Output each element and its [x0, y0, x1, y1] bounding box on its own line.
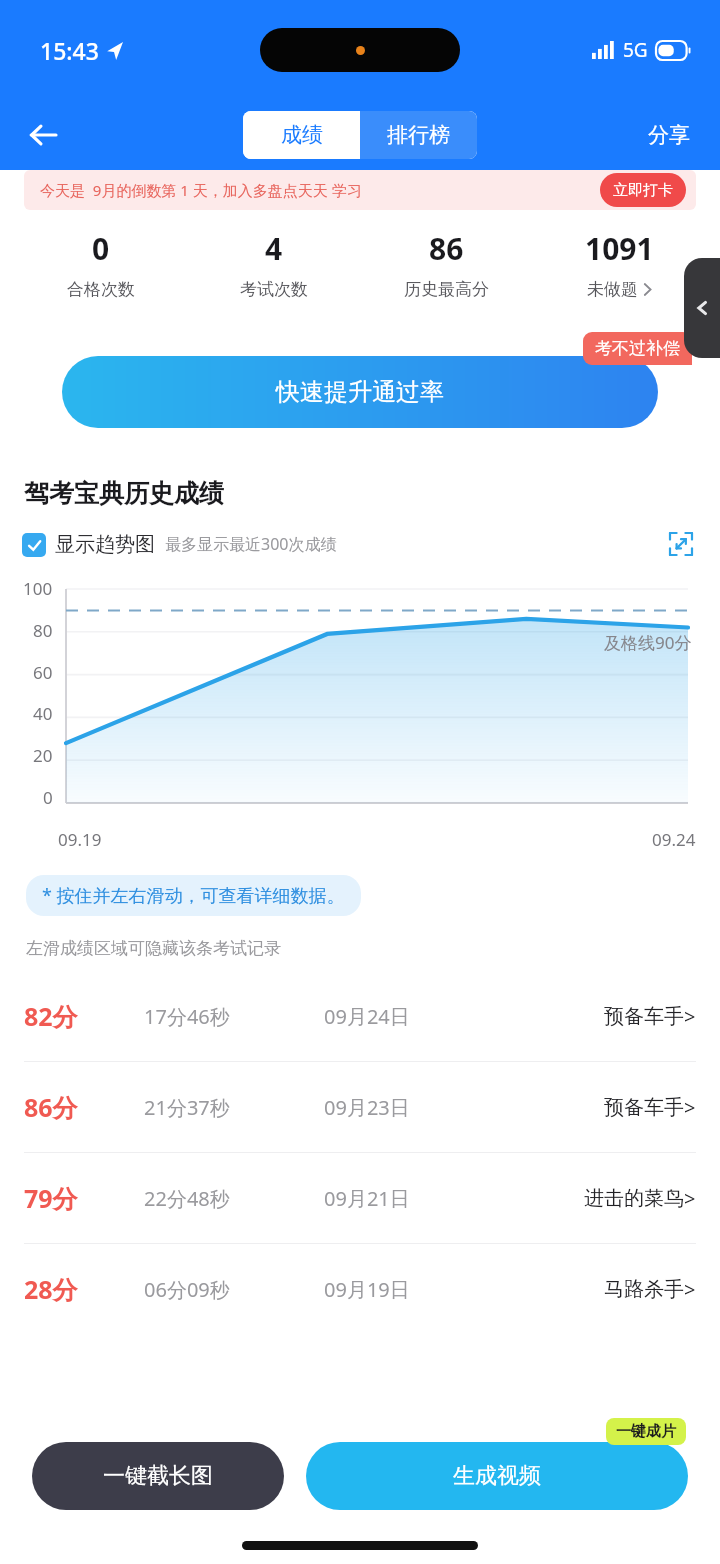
- staticText: 马路杀手: [604, 1277, 684, 1302]
- staticText: 40: [33, 702, 53, 725]
- staticText: 5G: [623, 37, 648, 63]
- button[interactable]: 86分: [0, 1062, 720, 1152]
- button[interactable]: 分享: [638, 114, 700, 156]
- button[interactable]: 4: [187, 228, 360, 300]
- staticText: 15:43: [40, 35, 99, 66]
- staticText: 09月24日: [324, 1003, 604, 1030]
- button[interactable]: Back: [14, 106, 72, 164]
- staticText: 82分: [24, 999, 144, 1033]
- staticText: 06分09秒: [144, 1276, 324, 1303]
- staticText: >: [684, 1003, 696, 1030]
- button[interactable]: 0: [14, 228, 187, 300]
- staticText: 预备车手: [604, 1004, 684, 1029]
- staticText: * 按住并左右滑动，可查看详细数据。: [42, 883, 345, 908]
- staticText: 预备车手: [604, 1095, 684, 1120]
- staticText: 立即打卡: [613, 181, 673, 200]
- staticText: 86分: [24, 1090, 144, 1124]
- button[interactable]: 快速提升通过率: [62, 356, 658, 428]
- staticText: >: [684, 1185, 696, 1212]
- staticText: 0: [43, 786, 53, 809]
- staticText: 80: [33, 619, 53, 642]
- staticText: 及格线90分: [604, 631, 692, 654]
- staticText: 21分37秒: [144, 1094, 324, 1121]
- staticText: 09月21日: [324, 1185, 584, 1212]
- button[interactable]: 86: [360, 228, 533, 300]
- button[interactable]: 79分: [0, 1153, 720, 1243]
- staticText: 快速提升通过率: [276, 377, 444, 407]
- staticText: 0: [92, 228, 110, 269]
- staticText: 最多显示最近300次成绩: [165, 533, 337, 555]
- staticText: 一键截长图: [103, 1462, 213, 1490]
- staticText: 排行榜: [387, 122, 450, 148]
- button[interactable]: 成绩: [243, 111, 360, 159]
- staticText: 驾考宝典历史成绩: [24, 478, 224, 509]
- button[interactable]: Fullscreen: [664, 527, 698, 561]
- button[interactable]: 显示趋势图: [22, 532, 155, 557]
- staticText: 09.24: [652, 828, 696, 851]
- staticText: 100: [23, 577, 53, 600]
- staticText: 09月23日: [324, 1094, 604, 1121]
- staticText: 60: [33, 661, 53, 684]
- staticText: 79分: [24, 1181, 144, 1215]
- staticText: 28分: [24, 1272, 144, 1306]
- staticText: >: [684, 1094, 696, 1121]
- button[interactable]: 立即打卡: [600, 173, 686, 207]
- button[interactable]: 82分: [0, 971, 720, 1061]
- staticText: 分享: [648, 122, 690, 148]
- staticText: 09.19: [58, 828, 102, 851]
- staticText: 4: [265, 228, 283, 269]
- staticText: 显示趋势图: [55, 532, 155, 557]
- staticText: 一键成片: [616, 1422, 676, 1441]
- staticText: 成绩: [281, 122, 323, 148]
- staticText: 20: [33, 744, 53, 767]
- button[interactable]: Expand panel: [684, 258, 720, 358]
- button[interactable]: 生成视频: [306, 1442, 688, 1510]
- button[interactable]: 一键截长图: [32, 1442, 284, 1510]
- staticText: >: [684, 1276, 696, 1303]
- staticText: 1091: [585, 228, 654, 269]
- button[interactable]: 28分: [0, 1244, 720, 1334]
- staticText: 86: [429, 228, 464, 269]
- staticText: 历史最高分: [404, 279, 489, 300]
- staticText: 考不过补偿: [595, 338, 680, 359]
- staticText: 今天是 9月的倒数第 1 天，加入多盘点天天 学习: [40, 180, 362, 200]
- button[interactable]: 1091: [533, 228, 706, 300]
- staticText: 进击的菜鸟: [584, 1186, 684, 1211]
- staticText: 左滑成绩区域可隐藏该条考试记录: [26, 938, 281, 959]
- staticText: 17分46秒: [144, 1003, 324, 1030]
- button[interactable]: 排行榜: [360, 111, 477, 159]
- staticText: 考试次数: [240, 279, 308, 300]
- staticText: 生成视频: [453, 1462, 541, 1490]
- staticText: 未做题: [587, 279, 638, 300]
- staticText: 合格次数: [67, 279, 135, 300]
- staticText: 09月19日: [324, 1276, 604, 1303]
- staticText: 22分48秒: [144, 1185, 324, 1212]
